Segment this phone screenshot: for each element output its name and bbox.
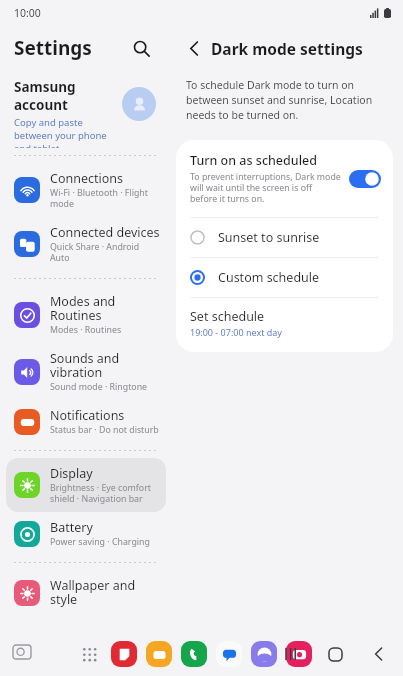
staticText: account — [14, 96, 68, 114]
button[interactable]: Phone — [181, 641, 207, 667]
button[interactable]: Internet — [251, 641, 277, 667]
staticText: Power saving · Charging — [50, 536, 150, 548]
staticText: Sunset to sunrise — [218, 229, 320, 246]
staticText: Samsung — [14, 78, 76, 96]
staticText: Battery — [50, 519, 93, 536]
button[interactable]: Wallpaper and style — [6, 570, 166, 615]
button[interactable]: Battery — [6, 512, 166, 555]
staticText: Connections — [50, 170, 123, 187]
staticText: Settings — [14, 35, 92, 61]
staticText: Brightness · Eye comfort shield · Naviga… — [50, 482, 151, 505]
staticText: Connected devices — [50, 224, 160, 241]
button[interactable]: Turn on as scheduled — [176, 140, 393, 217]
button[interactable]: Modes and Routines — [6, 286, 166, 343]
staticText: Turn on as scheduled — [190, 152, 317, 169]
button[interactable]: Notifications — [6, 400, 166, 443]
staticText: 19:00 - 07:00 next day — [190, 326, 282, 338]
staticText: Modes and Routines — [50, 293, 160, 324]
staticText: Modes · Routines — [50, 324, 122, 336]
button[interactable]: Home — [323, 642, 347, 666]
button[interactable]: Samsung Notes — [111, 641, 137, 667]
button[interactable]: Camera — [286, 641, 312, 667]
staticText: Display — [50, 465, 93, 482]
staticText: and tablet — [14, 142, 60, 148]
button[interactable]: Sunset to sunrise — [176, 218, 393, 257]
button[interactable]: Samsung — [0, 70, 172, 148]
staticText: Status bar · Do not disturb — [50, 424, 159, 436]
button[interactable]: Recents panel — [10, 642, 34, 666]
staticText: Wi-Fi · Bluetooth · Flight mode — [50, 187, 148, 210]
button[interactable]: Connected devices — [6, 217, 166, 271]
staticText: Sounds and vibration — [50, 350, 120, 381]
staticText: Notifications — [50, 407, 125, 424]
button[interactable]: Back — [367, 642, 391, 666]
button[interactable]: Recents — [279, 642, 303, 666]
staticText: To prevent interruptions, Dark mode will… — [190, 171, 341, 205]
staticText: 10:00 — [14, 6, 41, 20]
button[interactable]: Display — [6, 458, 166, 512]
button[interactable]: Connections — [6, 163, 166, 217]
button[interactable]: My Files — [146, 641, 172, 667]
button[interactable]: Custom schedule — [176, 258, 393, 297]
button[interactable]: Set schedule — [176, 298, 393, 352]
staticText: Copy and paste — [14, 116, 83, 129]
button[interactable]: Back — [180, 34, 208, 62]
button[interactable]: Apps — [76, 641, 102, 667]
staticText: Sound mode · Ringtone — [50, 381, 148, 393]
button[interactable]: Sounds and vibration — [6, 343, 166, 400]
staticText: Set schedule — [190, 308, 265, 325]
staticText: between your phone — [14, 129, 107, 142]
staticText: Wallpaper and style — [50, 577, 160, 608]
staticText: To schedule Dark mode to turn on between… — [186, 78, 385, 122]
button[interactable]: Messages — [216, 641, 242, 667]
staticText: Custom schedule — [218, 269, 320, 286]
button[interactable]: Search — [126, 33, 156, 63]
staticText: Dark mode settings — [211, 38, 363, 59]
staticText: Quick Share · Android Auto — [50, 241, 160, 264]
